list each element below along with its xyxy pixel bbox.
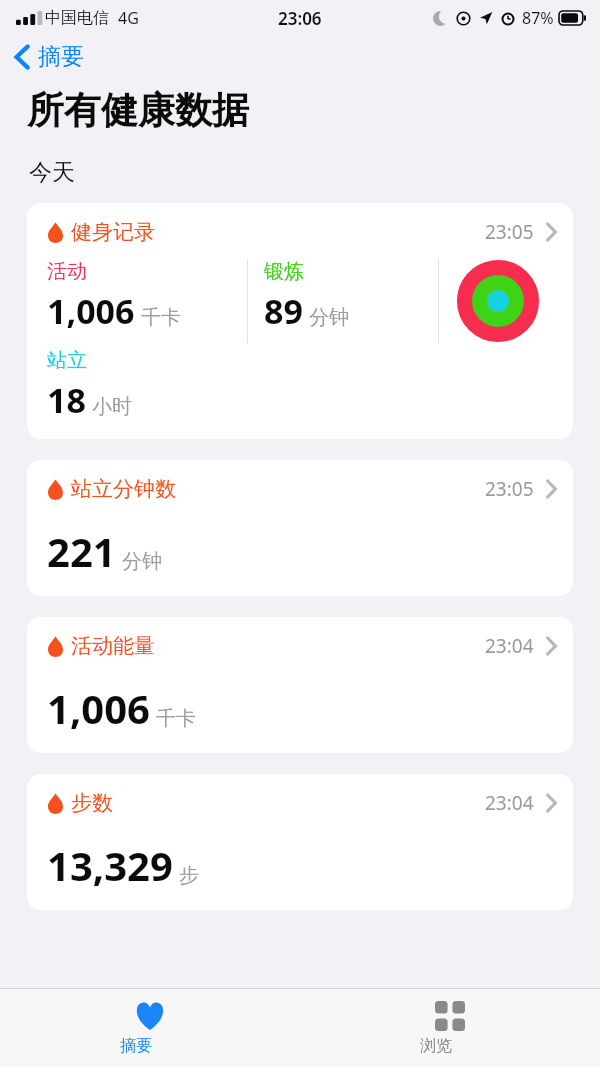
- staticText: 步数: [71, 790, 113, 816]
- staticText: 站立分钟数: [71, 476, 176, 502]
- staticText: 13,329: [47, 838, 173, 892]
- staticText: 分钟: [122, 549, 162, 574]
- staticText: 23:04: [485, 790, 534, 816]
- staticText: 4G: [118, 7, 139, 29]
- button[interactable]: 摘要: [0, 989, 300, 1067]
- staticText: 中国电信: [45, 8, 109, 28]
- staticText: 摘要: [120, 1036, 180, 1056]
- button[interactable]: 健身记录: [27, 203, 573, 439]
- staticText: 步: [179, 863, 199, 888]
- staticText: 小时: [92, 394, 132, 419]
- staticText: 1,006: [47, 681, 150, 735]
- staticText: 89: [264, 288, 303, 334]
- staticText: 所有健康数据: [27, 87, 249, 134]
- staticText: 锻炼: [264, 259, 304, 284]
- staticText: 87%: [522, 7, 554, 29]
- staticText: 摘要: [38, 42, 84, 71]
- staticText: 浏览: [420, 1036, 480, 1056]
- staticText: 今天: [29, 158, 75, 187]
- button[interactable]: 摘要: [0, 36, 96, 77]
- staticText: 23:05: [485, 219, 534, 245]
- staticText: 23:05: [485, 476, 534, 502]
- staticText: 分钟: [309, 305, 349, 330]
- button[interactable]: 站立分钟数: [27, 460, 573, 596]
- staticText: 千卡: [156, 706, 196, 731]
- staticText: 活动: [47, 259, 87, 284]
- staticText: 221: [47, 524, 116, 578]
- button[interactable]: 浏览: [300, 989, 600, 1067]
- button[interactable]: 步数: [27, 774, 573, 910]
- staticText: 23:04: [485, 633, 534, 659]
- staticText: 活动能量: [71, 633, 155, 659]
- staticText: 健身记录: [71, 219, 155, 245]
- staticText: 23:06: [278, 7, 322, 30]
- staticText: 1,006: [47, 288, 135, 334]
- staticText: 站立: [47, 348, 87, 373]
- staticText: 千卡: [141, 305, 181, 330]
- staticText: 18: [47, 377, 86, 423]
- button[interactable]: 活动能量: [27, 617, 573, 753]
